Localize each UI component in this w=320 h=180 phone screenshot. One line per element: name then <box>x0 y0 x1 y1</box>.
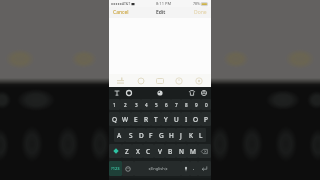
button[interactable]: Draw <box>134 74 148 87</box>
button[interactable]: G <box>156 128 166 142</box>
staticText: A <box>117 131 122 140</box>
button[interactable]: Done <box>193 7 208 18</box>
button[interactable]: H <box>166 128 176 142</box>
button[interactable]: Themes <box>187 88 196 97</box>
staticText: 9 <box>195 102 198 108</box>
button[interactable]: N <box>176 144 187 158</box>
button[interactable]: J <box>176 128 186 142</box>
button[interactable]: 2 <box>120 99 131 110</box>
button[interactable]: 3 <box>131 99 141 110</box>
staticText: V <box>158 147 162 156</box>
staticText: C <box>146 147 151 156</box>
staticText: X <box>136 147 140 156</box>
staticText: W <box>122 115 129 124</box>
button[interactable]: Backspace <box>198 144 211 158</box>
staticText: 5 <box>155 102 158 108</box>
staticText: O <box>193 115 199 124</box>
staticText: T <box>154 115 158 124</box>
staticText: Y <box>164 115 168 124</box>
button[interactable]: Z <box>122 144 132 158</box>
button[interactable]: T <box>151 112 161 126</box>
button[interactable]: L <box>196 128 206 142</box>
staticText: 4 <box>145 102 148 108</box>
staticText: J <box>180 131 182 140</box>
button[interactable]: B <box>165 144 176 158</box>
staticText: R <box>144 115 149 124</box>
button[interactable]: R <box>141 112 151 126</box>
button[interactable]: Enter <box>198 161 211 176</box>
button[interactable]: X <box>132 144 143 158</box>
staticText: H <box>169 131 174 140</box>
staticText: 6 <box>165 102 168 108</box>
staticText: 2 <box>124 102 127 108</box>
button[interactable]: F <box>146 128 156 142</box>
button[interactable]: Shift <box>109 144 122 158</box>
button[interactable]: 9 <box>191 99 201 110</box>
button[interactable]: V <box>154 144 165 158</box>
staticText: AT&T <box>122 1 131 6</box>
staticText: Edit <box>156 9 166 16</box>
button[interactable]: E <box>131 112 141 126</box>
button[interactable]: 0 <box>201 99 211 110</box>
staticText: Done <box>194 9 207 16</box>
staticText: P <box>204 115 208 124</box>
button[interactable]: S <box>125 128 136 142</box>
staticText: I <box>185 115 188 124</box>
button[interactable]: A <box>114 128 125 142</box>
button[interactable]: 7 <box>171 99 181 110</box>
button[interactable]: Settings <box>124 88 133 97</box>
staticText: E <box>134 115 138 124</box>
button[interactable]: 5 <box>151 99 161 110</box>
staticText: N <box>179 147 184 156</box>
button[interactable]: Camera <box>153 74 167 87</box>
button[interactable]: 8 <box>181 99 191 110</box>
staticText: Cancel <box>113 9 129 16</box>
button[interactable]: ?123 <box>109 161 122 176</box>
staticText: 7 <box>175 102 178 108</box>
button[interactable]: M <box>187 144 198 158</box>
button[interactable]: P <box>201 112 211 126</box>
staticText: G <box>159 131 164 140</box>
button[interactable]: Stickers <box>155 88 164 97</box>
staticText: English <box>151 166 165 171</box>
staticText: S <box>129 131 133 140</box>
staticText: B <box>168 147 173 156</box>
button[interactable]: I <box>181 112 191 126</box>
button[interactable]: 4 <box>141 99 151 110</box>
button[interactable]: English <box>134 161 181 176</box>
staticText: U <box>174 115 179 124</box>
staticText: 3 <box>135 102 138 108</box>
staticText: K <box>189 131 194 140</box>
staticText: 1 <box>113 102 116 108</box>
button[interactable]: Attach <box>114 74 128 87</box>
button[interactable]: Y <box>161 112 171 126</box>
button[interactable]: U <box>171 112 181 126</box>
staticText: . <box>193 165 195 172</box>
staticText: 78% <box>193 1 200 6</box>
staticText: L <box>199 131 203 140</box>
button[interactable]: 6 <box>161 99 171 110</box>
button[interactable]: K <box>186 128 196 142</box>
staticText: M <box>190 147 196 156</box>
button[interactable]: Voice input <box>181 161 190 176</box>
button[interactable]: W <box>120 112 131 126</box>
button[interactable]: More <box>192 74 206 87</box>
staticText: 0 <box>205 102 208 108</box>
staticText: Z <box>125 147 129 156</box>
button[interactable]: 1 <box>109 99 120 110</box>
button[interactable]: Q <box>109 112 120 126</box>
button[interactable]: O <box>191 112 201 126</box>
button[interactable]: D <box>136 128 146 142</box>
staticText: Q <box>112 115 118 124</box>
button[interactable]: Text editing <box>112 88 121 97</box>
staticText: D <box>139 131 144 140</box>
staticText: 8 <box>185 102 188 108</box>
button[interactable]: Emoji <box>122 161 134 176</box>
button[interactable]: Clock <box>172 74 186 87</box>
staticText: ?123 <box>111 166 120 171</box>
staticText: 8:11 PM <box>156 1 172 6</box>
button[interactable]: More options <box>199 88 208 97</box>
button[interactable]: C <box>143 144 154 158</box>
button[interactable]: . <box>190 161 198 176</box>
button[interactable]: Cancel <box>112 7 130 18</box>
